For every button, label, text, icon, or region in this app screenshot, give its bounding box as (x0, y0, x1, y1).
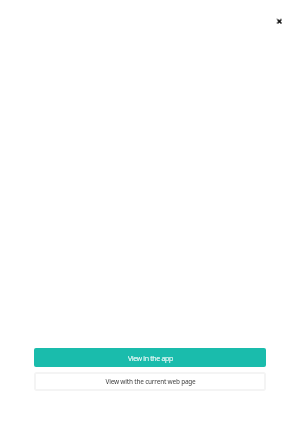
staticText: View with the current web page (105, 377, 196, 386)
button[interactable]: View with the current web page (34, 372, 266, 391)
staticText: View in the app (128, 353, 173, 363)
button[interactable]: Close (266, 8, 292, 34)
button[interactable]: View in the app (34, 348, 266, 367)
